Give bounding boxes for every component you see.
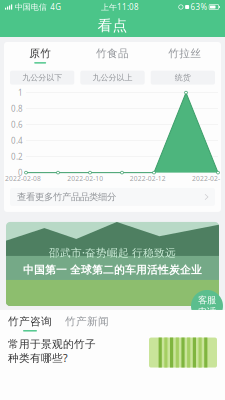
staticText: 竹产新闻 (65, 315, 109, 328)
staticText: 查看更多竹产品品类细分 (17, 191, 116, 203)
staticText: 2022-02-12 (130, 174, 166, 183)
staticText: 1 (18, 87, 23, 98)
staticText: 63% (191, 2, 208, 12)
staticText: 上午11:08 (101, 2, 139, 12)
button[interactable]: 邵武市·奋势崛起 行稳致远 (6, 222, 219, 306)
staticText: 原竹 (29, 47, 51, 60)
button[interactable]: 九公分以上 (80, 71, 145, 85)
staticText: 邵武市·奋势崛起 行稳致远 (49, 245, 176, 259)
button[interactable]: 九公分以下 (10, 71, 74, 85)
staticText: 0.2 (11, 151, 23, 162)
staticText: 电话 (198, 306, 216, 317)
staticText: 0.4 (11, 135, 23, 146)
staticText: 九公分以下 (22, 73, 62, 82)
staticText: 中国第一 全球第二的车用活性炭企业 (23, 263, 202, 277)
staticText: 中国电信 (15, 2, 47, 12)
staticText: 2022-02- (192, 174, 220, 183)
button[interactable]: 原竹 (4, 42, 76, 69)
button[interactable]: 常用于景观的竹子种类有哪些? (0, 332, 225, 368)
staticText: 2022-02-08 (5, 174, 41, 183)
staticText: 0.8 (11, 103, 23, 114)
staticText: 2022-02-10 (67, 174, 103, 183)
button[interactable]: 查看更多竹产品品类细分 (10, 188, 215, 206)
staticText: 竹食品 (96, 47, 129, 60)
button[interactable]: 竹产新闻 (65, 315, 109, 332)
button[interactable]: 竹食品 (76, 42, 149, 69)
button[interactable]: 统货 (151, 71, 215, 85)
staticText: 常用于景观的竹子种类有哪些? (8, 338, 96, 365)
staticText: 0.6 (11, 119, 23, 130)
button[interactable]: 竹拉丝 (149, 42, 221, 69)
staticText: 竹拉丝 (168, 47, 201, 60)
button[interactable]: 竹产咨询 (8, 315, 52, 332)
staticText: 客服 (198, 294, 216, 306)
staticText: 4G (50, 2, 61, 12)
staticText: 看点 (97, 16, 127, 34)
staticText: 0 (18, 167, 23, 178)
staticText: 九公分以上 (92, 73, 132, 82)
staticText: 竹产咨询 (8, 315, 52, 328)
button[interactable]: 客服 (191, 290, 223, 322)
staticText: 统货 (175, 73, 191, 82)
